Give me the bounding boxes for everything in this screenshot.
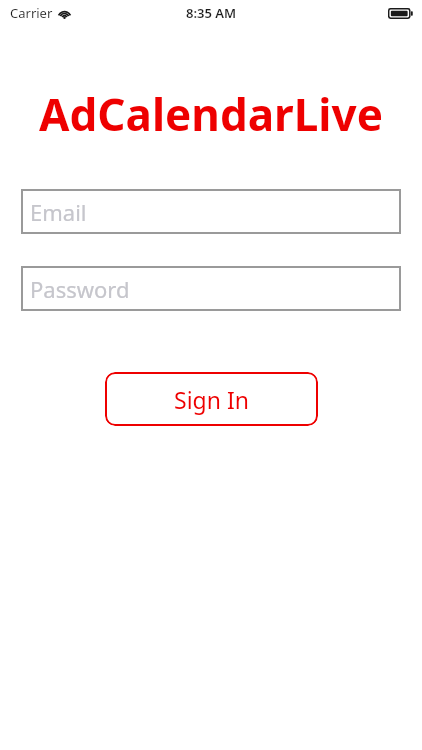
staticText: Email (30, 197, 87, 227)
staticText: Carrier (10, 4, 53, 22)
staticText: Sign In (174, 384, 249, 415)
button[interactable]: Password (21, 266, 401, 311)
button[interactable]: Email (21, 189, 401, 234)
staticText: AdCalendarLive (39, 84, 383, 144)
button[interactable]: Sign In (105, 372, 318, 426)
staticText: 8:35 AM (186, 4, 237, 22)
staticText: Password (30, 274, 130, 304)
